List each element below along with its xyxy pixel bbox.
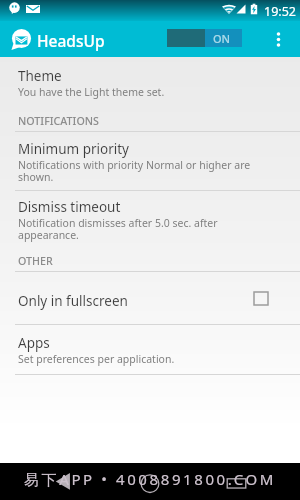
button[interactable]: Minimum priority (0, 132, 300, 190)
staticText: Only in fullscreen (18, 292, 128, 310)
staticText: Notification dismisses after 5.0 sec. af… (18, 216, 272, 242)
staticText: Minimum priority (18, 140, 129, 158)
staticText: 易下APP • 4008891800.COM (0, 469, 300, 489)
button[interactable]: Back (50, 470, 74, 492)
button[interactable]: Recent apps (222, 470, 251, 492)
staticText: Set preferences per application. (18, 352, 175, 366)
staticText: 19:52 (264, 3, 296, 20)
staticText: OTHER (18, 254, 53, 269)
staticText: Dismiss timeout (18, 198, 121, 216)
button[interactable]: Theme (0, 57, 300, 103)
staticText: ON (213, 31, 231, 46)
staticText: HeadsUp (37, 30, 105, 51)
staticText: You have the Light theme set. (18, 85, 165, 99)
staticText: NOTIFICATIONS (18, 114, 99, 129)
button[interactable]: Apps (0, 325, 300, 374)
button[interactable]: Only in fullscreen (0, 272, 300, 324)
button[interactable]: Home (133, 470, 167, 492)
button[interactable]: Dismiss timeout (0, 191, 300, 248)
staticText: Theme (18, 67, 62, 85)
button[interactable]: ON (167, 29, 242, 47)
button[interactable]: More options (270, 31, 287, 48)
staticText: Apps (18, 334, 50, 352)
staticText: Notifications with priority Normal or hi… (18, 158, 272, 184)
